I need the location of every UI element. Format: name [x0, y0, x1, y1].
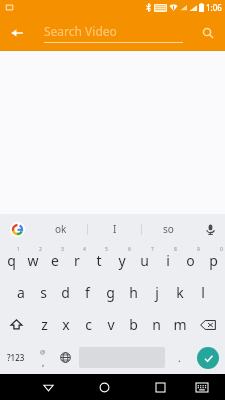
staticText: 0 [220, 246, 223, 253]
staticText: d [61, 283, 70, 302]
staticText: i [166, 251, 170, 270]
button[interactable]: ok [34, 214, 87, 244]
staticText: ?123 [7, 352, 25, 363]
button[interactable]: Backspace [191, 308, 225, 341]
button[interactable]: h [122, 276, 145, 308]
button[interactable]: @ [32, 341, 54, 374]
staticText: l [201, 283, 205, 302]
button[interactable]: I [88, 214, 141, 244]
button[interactable]: c [77, 308, 99, 341]
staticText: c [85, 315, 92, 334]
button[interactable]: i [156, 244, 179, 276]
staticText: . [178, 351, 181, 365]
button[interactable]: Search [197, 347, 219, 369]
button[interactable]: so [142, 214, 195, 244]
staticText: j [155, 283, 159, 302]
staticText: 7 [151, 246, 154, 253]
staticText: Search Video [44, 23, 117, 39]
button[interactable]: m [168, 308, 191, 341]
button[interactable]: x [55, 308, 77, 341]
staticText: o [186, 251, 195, 270]
button[interactable]: p [202, 244, 225, 276]
button[interactable]: Search [191, 16, 225, 50]
button[interactable]: d [54, 276, 76, 308]
staticText: z [41, 315, 48, 334]
button[interactable]: Back [0, 16, 34, 50]
staticText: ok [55, 222, 67, 236]
staticText: e [51, 251, 59, 270]
staticText: w [27, 251, 39, 270]
button[interactable]: Hide keyboard [185, 374, 218, 400]
staticText: q [7, 251, 16, 270]
staticText: I [113, 222, 117, 236]
staticText: g [106, 283, 115, 302]
button[interactable]: q [0, 244, 22, 276]
staticText: b [129, 315, 138, 334]
button[interactable]: ?123 [0, 341, 32, 374]
button[interactable]: e [44, 244, 66, 276]
staticText: n [152, 315, 161, 334]
staticText: 1:06 [206, 2, 222, 13]
button[interactable]: Recent apps [144, 374, 177, 400]
button[interactable]: u [133, 244, 156, 276]
button[interactable]: b [122, 308, 145, 341]
staticText: s [40, 283, 47, 302]
button[interactable]: w [22, 244, 44, 276]
staticText: 6 [128, 246, 131, 253]
button[interactable]: s [32, 276, 54, 308]
staticText: r [74, 251, 80, 270]
button[interactable]: Back [31, 374, 65, 400]
staticText: v [107, 315, 115, 334]
button[interactable]: y [110, 244, 133, 276]
staticText: 3 [61, 246, 64, 253]
staticText: 4 [83, 246, 86, 253]
button[interactable]: Voice input [195, 214, 225, 244]
staticText: so [163, 222, 174, 236]
button[interactable]: v [99, 308, 122, 341]
staticText: p [209, 251, 218, 270]
button[interactable]: r [66, 244, 88, 276]
staticText: u [140, 251, 149, 270]
button[interactable]: Search Video [34, 15, 191, 51]
staticText: y [118, 251, 126, 270]
button[interactable]: n [145, 308, 168, 341]
staticText: 5 [105, 246, 108, 253]
button[interactable]: Google [0, 214, 34, 244]
button[interactable]: Shift [0, 308, 33, 341]
staticText: 1 [17, 246, 20, 253]
staticText: f [85, 283, 90, 302]
staticText: 8 [174, 246, 177, 253]
staticText: 9 [197, 246, 200, 253]
staticText: , [42, 356, 45, 368]
staticText: x [62, 315, 70, 334]
staticText: k [176, 283, 184, 302]
staticText: m [173, 315, 187, 334]
staticText: h [129, 283, 138, 302]
button[interactable]: Change language [54, 341, 76, 374]
staticText: 2 [39, 246, 42, 253]
staticText: t [96, 251, 102, 270]
button[interactable]: j [145, 276, 168, 308]
button[interactable]: g [99, 276, 122, 308]
staticText: a [17, 283, 25, 302]
button[interactable]: z [33, 308, 55, 341]
button[interactable]: f [76, 276, 99, 308]
button[interactable]: . [168, 341, 190, 374]
button[interactable]: l [191, 276, 214, 308]
button[interactable]: k [168, 276, 191, 308]
button[interactable]: a [10, 276, 32, 308]
button[interactable]: o [179, 244, 202, 276]
button[interactable]: Home [88, 374, 121, 400]
button[interactable]: t [88, 244, 110, 276]
staticText: @ [40, 348, 46, 356]
